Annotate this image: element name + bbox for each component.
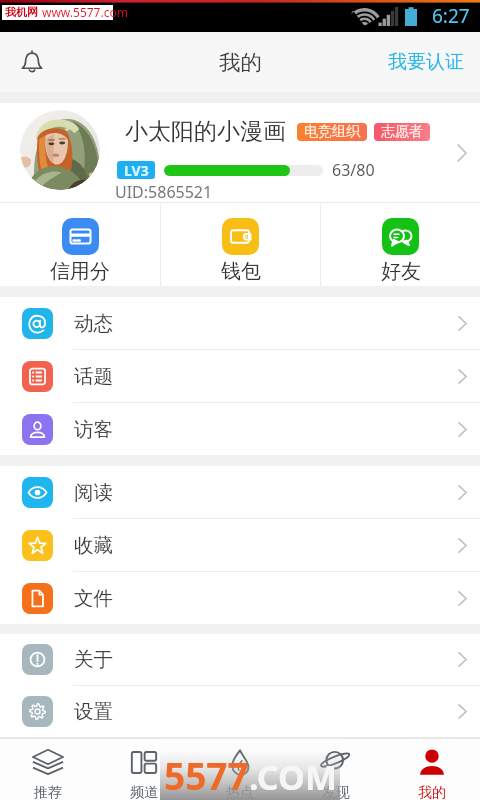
staticText: 我的 xyxy=(219,49,262,76)
staticText: 设置 xyxy=(74,699,113,724)
staticText: 63/80 xyxy=(332,159,375,181)
staticText: 信用分 xyxy=(50,259,110,284)
staticText: 热点 xyxy=(226,784,254,800)
staticText: 访客 xyxy=(74,417,113,442)
button[interactable]: 动态 xyxy=(0,297,480,349)
button[interactable]: 话题 xyxy=(0,350,480,402)
staticText: 阅读 xyxy=(74,480,113,505)
button[interactable]: 我要认证 xyxy=(374,38,480,86)
staticText: 5577 xyxy=(164,750,249,800)
button[interactable]: 信用分 xyxy=(0,203,160,286)
staticText: 动态 xyxy=(74,311,113,336)
staticText: 话题 xyxy=(74,364,113,389)
staticText: 我机网 xyxy=(5,5,38,19)
button[interactable]: 关于 xyxy=(0,634,480,685)
button[interactable]: 阅读 xyxy=(0,466,480,518)
button[interactable]: 访客 xyxy=(0,403,480,455)
staticText: 推荐 xyxy=(34,784,62,800)
staticText: 文件 xyxy=(74,586,113,611)
button[interactable]: 收藏 xyxy=(0,519,480,571)
staticText: 频道 xyxy=(130,784,158,800)
button[interactable]: Notifications xyxy=(9,39,55,85)
button[interactable]: 我的 xyxy=(384,739,480,800)
staticText: www.5577.com xyxy=(42,4,128,20)
button[interactable]: 推荐 xyxy=(0,739,96,800)
button[interactable]: 热点 xyxy=(192,739,288,800)
button[interactable]: 频道 xyxy=(96,739,192,800)
staticText: 钱包 xyxy=(221,259,261,284)
staticText: 电竞组织 xyxy=(304,123,360,141)
button[interactable]: 设置 xyxy=(0,686,480,737)
staticText: .COM xyxy=(249,754,337,800)
button[interactable]: 小太阳的小漫画 xyxy=(0,103,480,202)
button[interactable]: 钱包 xyxy=(161,203,320,286)
staticText: 6:27 xyxy=(432,3,470,29)
staticText: 我的 xyxy=(418,784,446,800)
staticText: 收藏 xyxy=(74,533,113,558)
staticText: UID:5865521 xyxy=(115,181,213,203)
staticText: LV3 xyxy=(124,161,149,179)
staticText: 小太阳的小漫画 xyxy=(125,117,286,146)
button[interactable]: 文件 xyxy=(0,572,480,624)
staticText: 我要认证 xyxy=(388,50,464,74)
staticText: 关于 xyxy=(74,647,113,672)
staticText: 志愿者 xyxy=(381,123,423,141)
button[interactable]: 好友 xyxy=(321,203,480,286)
button[interactable]: 发现 xyxy=(288,739,384,800)
staticText: 好友 xyxy=(381,259,421,284)
staticText: 发现 xyxy=(322,784,350,800)
